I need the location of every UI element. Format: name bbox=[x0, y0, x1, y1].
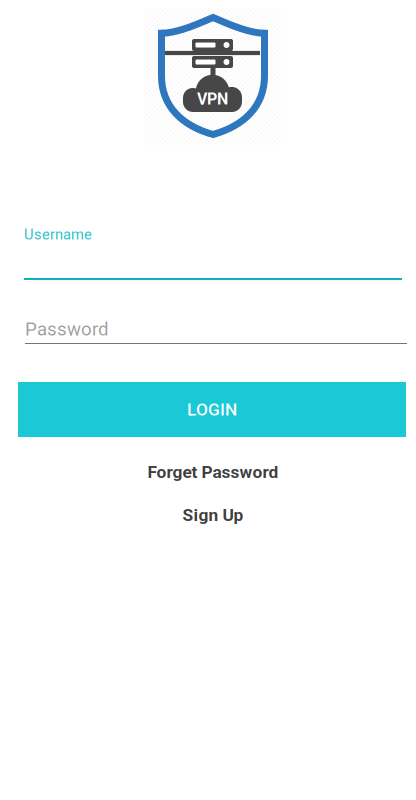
staticText: Password bbox=[25, 318, 109, 340]
button[interactable]: Forget Password bbox=[19, 461, 407, 483]
staticText: LOGIN bbox=[187, 399, 237, 420]
staticText: Forget Password bbox=[147, 462, 278, 482]
staticText: VPN bbox=[197, 90, 228, 108]
staticText: Username bbox=[24, 226, 92, 243]
staticText: Sign Up bbox=[182, 505, 243, 525]
button[interactable]: LOGIN bbox=[18, 382, 406, 437]
button[interactable]: Sign Up bbox=[19, 504, 407, 526]
